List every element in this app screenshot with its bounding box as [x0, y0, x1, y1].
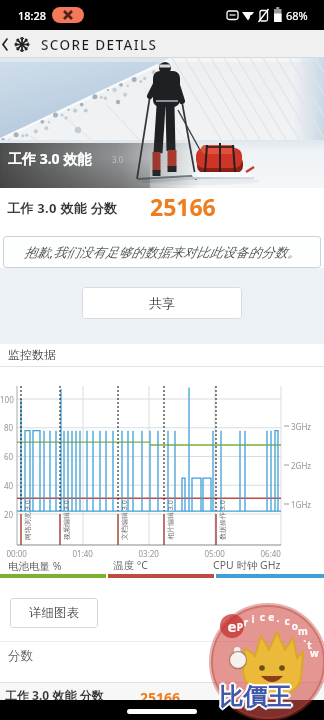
staticText: 18:28 [18, 8, 47, 23]
staticText: 抱歉,我们没有足够的数据来对比此设备的分数。 [24, 243, 301, 261]
staticText: 详细图表 [29, 605, 79, 621]
staticText: 温度 °C [113, 558, 148, 572]
staticText: 比價王 [219, 684, 291, 714]
staticText: 比價王 [221, 682, 293, 712]
staticText: 68% [286, 8, 308, 23]
staticText: 监控数据 [8, 347, 56, 362]
staticText: 比價王 [218, 681, 290, 711]
staticText: 工作 3.0 效能 分数 [5, 687, 104, 703]
staticText: 共享 [149, 295, 175, 311]
button[interactable]: 共享 [82, 287, 242, 319]
staticText: 比價王 [220, 683, 292, 713]
staticText: 比價王 [220, 681, 292, 711]
staticText: 分数 [8, 648, 33, 664]
staticText: 25166 [150, 191, 216, 222]
button[interactable]: 详细图表 [10, 598, 98, 628]
staticText: 工作 3.0 效能 分数 [7, 199, 118, 217]
staticText: 电池电量 % [8, 559, 62, 573]
button[interactable]: SCORE DETAILS [0, 30, 324, 58]
staticText: 比價王 [218, 683, 290, 713]
staticText: 25166 [140, 688, 181, 707]
staticText: 比價王 [219, 680, 291, 710]
staticText: 比價王 [219, 682, 291, 712]
staticText: 3.0 [112, 154, 124, 165]
staticText: 工作 3.0 效能 [8, 149, 92, 168]
staticText: SCORE DETAILS [41, 36, 158, 54]
staticText: 比價王 [217, 682, 289, 712]
staticText: CPU 时钟 GHz [213, 558, 281, 572]
